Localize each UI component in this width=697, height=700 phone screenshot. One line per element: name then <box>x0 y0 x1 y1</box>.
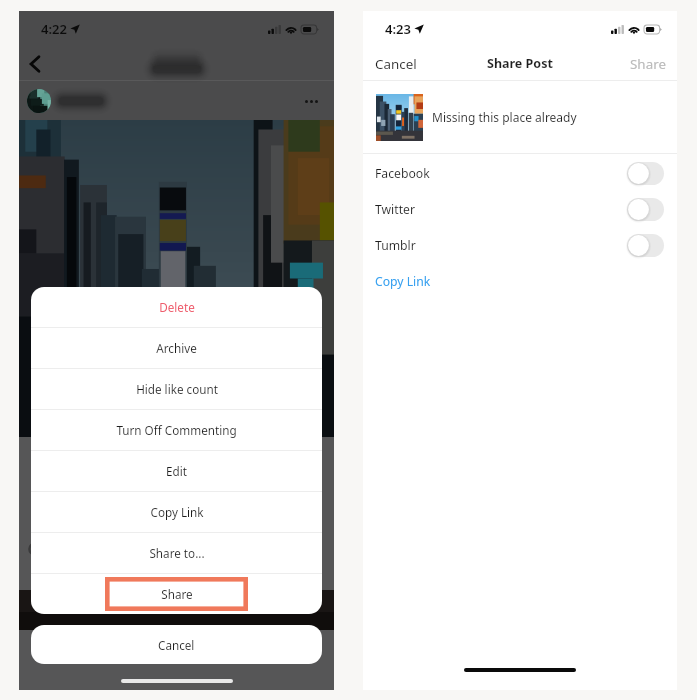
button[interactable]: Facebook <box>375 155 664 191</box>
staticText: Delete <box>159 299 195 315</box>
staticText: Copy Link <box>150 504 204 520</box>
staticText: Hide like count <box>136 381 218 397</box>
staticText: Missing this place already <box>432 109 577 125</box>
staticText: Twitter <box>375 201 415 218</box>
staticText: Cancel <box>158 637 195 653</box>
button[interactable]: Twitter <box>375 191 664 227</box>
button[interactable]: Turn Off Commenting <box>31 410 322 450</box>
button[interactable]: Cancel <box>375 55 417 73</box>
button[interactable]: Hide like count <box>31 369 322 409</box>
button[interactable]: Share to... <box>31 533 322 573</box>
button[interactable]: Archive <box>31 328 322 368</box>
button[interactable]: Share <box>630 55 666 73</box>
button[interactable]: Tumblr <box>375 227 664 263</box>
staticText: Share to... <box>149 545 205 561</box>
staticText: Turn Off Commenting <box>116 422 237 438</box>
staticText: 4:22 <box>41 20 67 38</box>
staticText: Share <box>161 586 193 602</box>
button[interactable]: Edit <box>31 451 322 491</box>
button[interactable]: Back <box>26 55 44 73</box>
staticText: Cancel <box>375 55 417 73</box>
staticText: Facebook <box>375 165 430 182</box>
staticText: 4:23 <box>385 20 411 38</box>
button[interactable]: Copy Link <box>375 263 677 299</box>
staticText: Archive <box>156 340 197 356</box>
button[interactable]: More options <box>300 90 322 112</box>
staticText: Edit <box>166 463 187 479</box>
staticText: Share <box>630 55 666 73</box>
button[interactable]: Copy Link <box>31 492 322 532</box>
button[interactable]: Share <box>31 574 322 614</box>
button[interactable]: Cancel <box>31 625 322 664</box>
staticText: Tumblr <box>375 237 416 254</box>
staticText: Share Post <box>487 55 553 72</box>
staticText: Copy Link <box>375 273 431 290</box>
button[interactable]: Delete <box>31 287 322 327</box>
